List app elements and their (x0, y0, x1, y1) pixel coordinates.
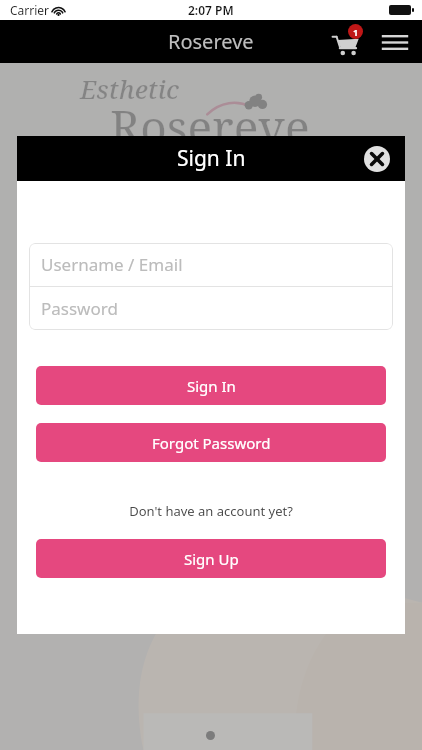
staticText: 1 (353, 26, 359, 38)
staticText: Rosereve (110, 95, 310, 158)
staticText: 2:07 PM (188, 2, 234, 18)
staticText: Sign In (177, 144, 246, 173)
button[interactable]: Password (29, 287, 393, 330)
staticText: Username / Email (41, 253, 183, 276)
staticText: Carrier (10, 2, 50, 18)
button[interactable]: Menu (374, 21, 416, 63)
staticText: Sign In (187, 376, 236, 396)
button[interactable]: Sign Up (36, 539, 386, 578)
staticText: Sign Up (184, 549, 239, 569)
button[interactable]: Forgot Password (36, 423, 386, 462)
staticText: Don't have an account yet? (17, 502, 405, 520)
staticText: Rosereve (168, 28, 254, 55)
staticText: Password (41, 297, 118, 320)
button[interactable]: Close (363, 145, 391, 173)
staticText: Esthetic (80, 71, 179, 106)
button[interactable]: Username / Email (29, 243, 393, 286)
staticText: Forgot Password (152, 433, 271, 453)
button[interactable]: Sign In (36, 366, 386, 405)
button[interactable]: Cart, 1 item (324, 21, 366, 63)
